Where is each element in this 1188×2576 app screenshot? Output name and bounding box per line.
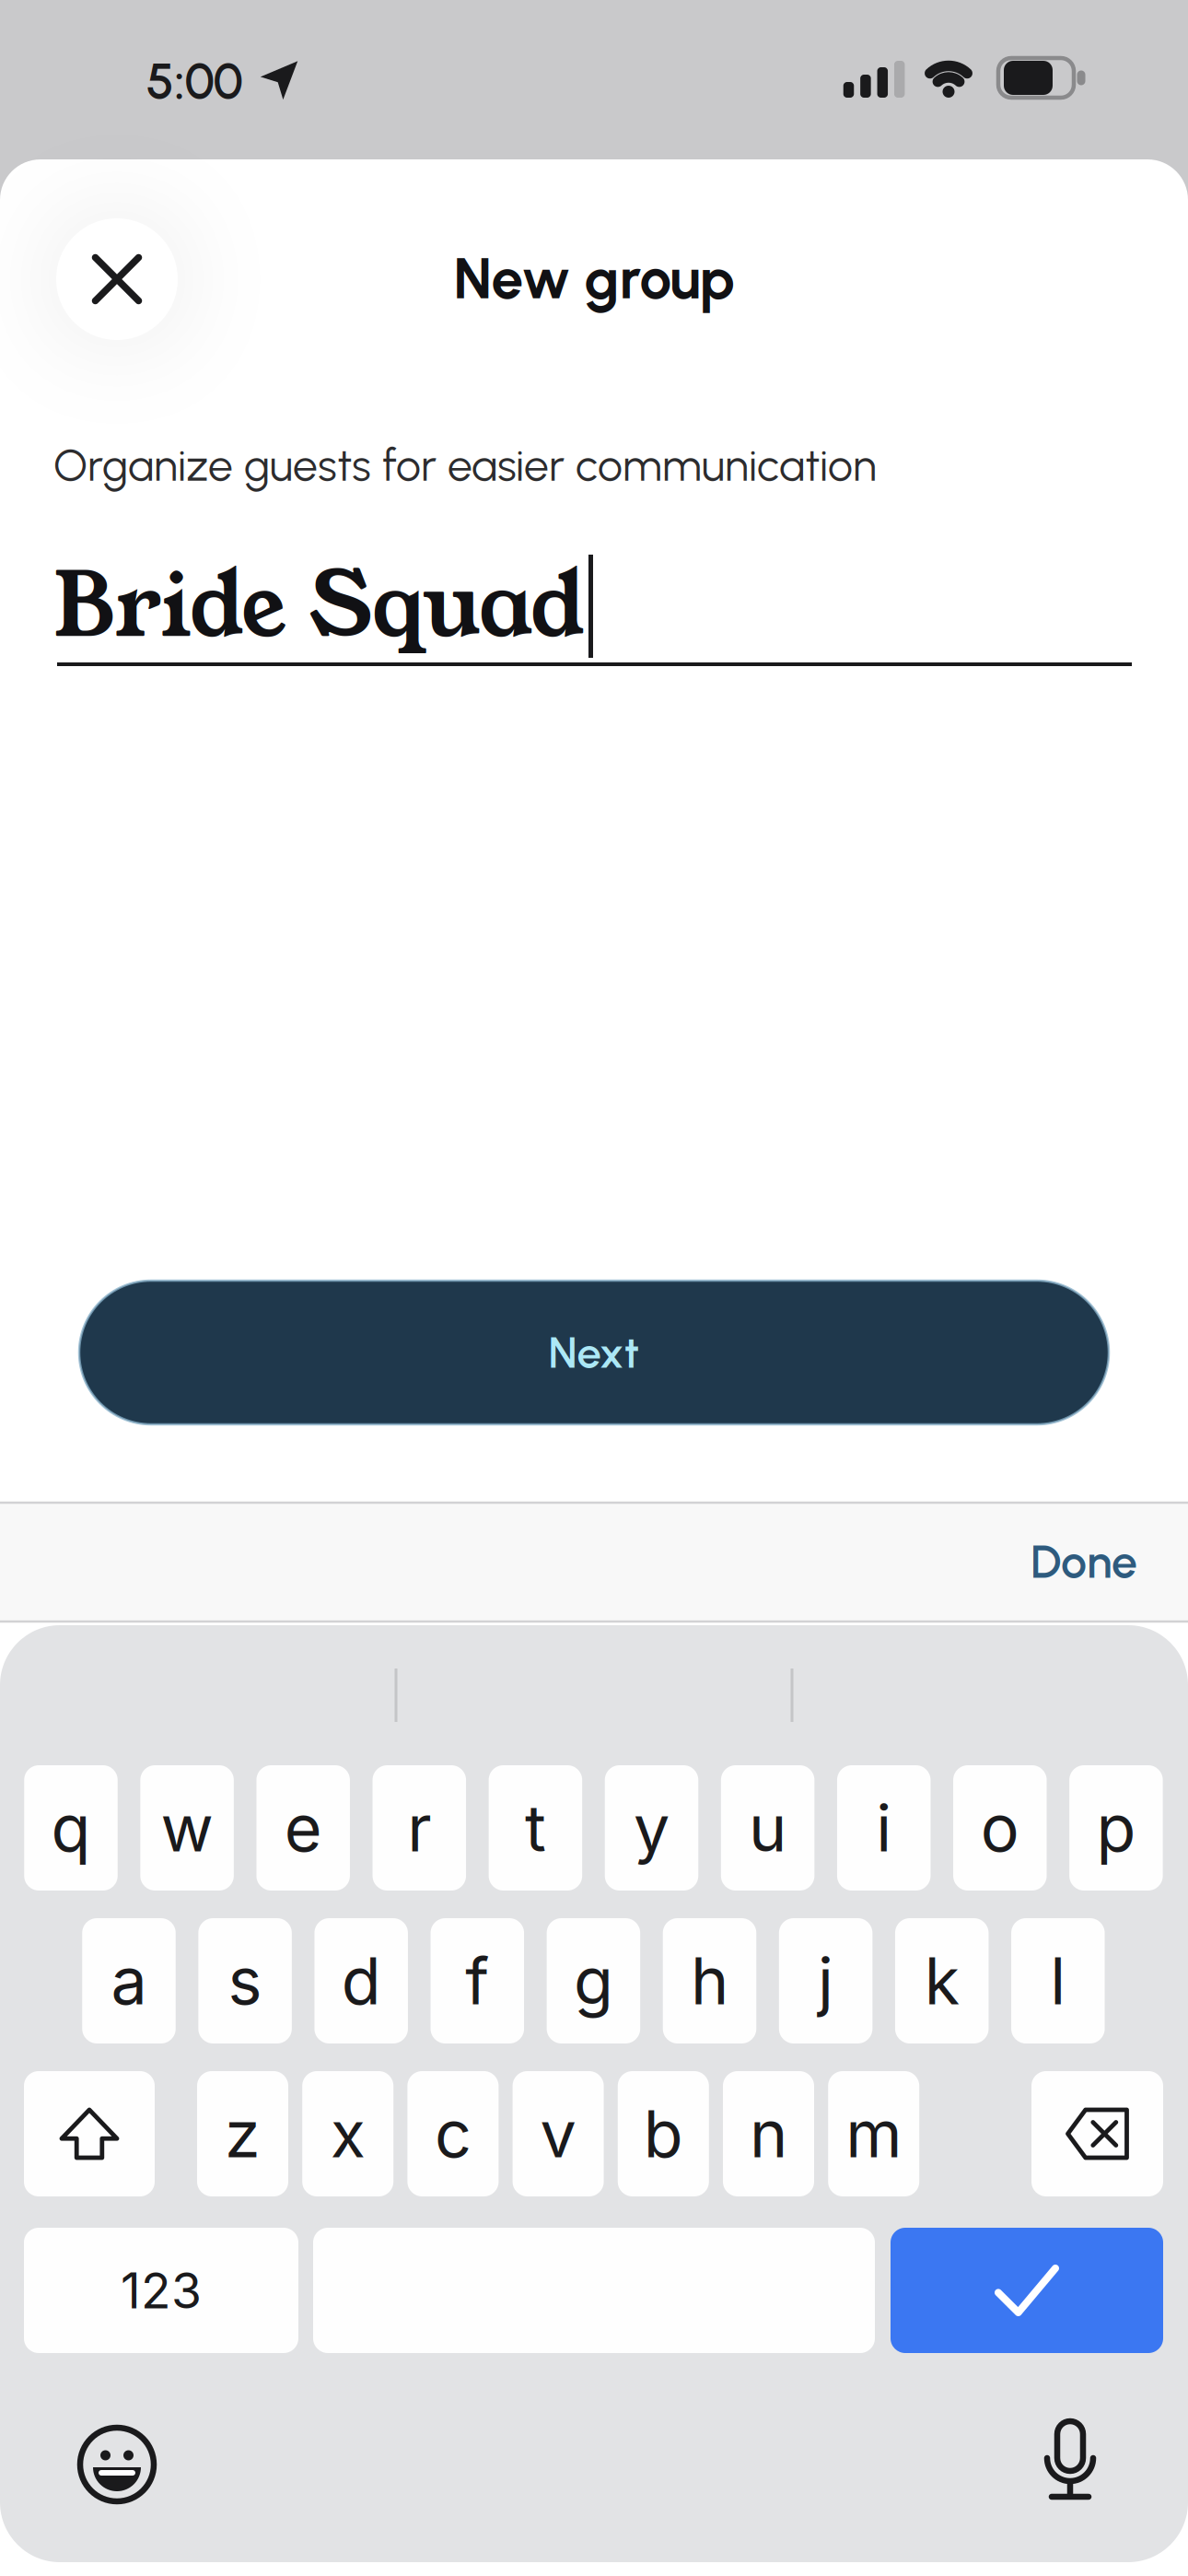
staticText: k bbox=[924, 1942, 959, 2020]
staticText: h bbox=[691, 1942, 728, 2020]
button[interactable]: Next bbox=[79, 1281, 1109, 1424]
staticText: i bbox=[876, 1789, 892, 1867]
button[interactable]: e bbox=[256, 1765, 350, 1891]
staticText: Organize guests for easier communication bbox=[53, 439, 877, 492]
button[interactable]: x bbox=[302, 2071, 393, 2196]
staticText: m bbox=[846, 2095, 902, 2173]
button[interactable]: d bbox=[314, 1918, 408, 2043]
staticText: n bbox=[750, 2095, 787, 2173]
staticText: r bbox=[407, 1789, 431, 1867]
button[interactable]: h bbox=[663, 1918, 756, 2043]
button[interactable]: f bbox=[431, 1918, 524, 2043]
button[interactable]: b bbox=[618, 2071, 709, 2196]
button[interactable]: j bbox=[779, 1918, 872, 2043]
button[interactable]: z bbox=[197, 2071, 288, 2196]
button[interactable]: w bbox=[140, 1765, 234, 1891]
button[interactable]: k bbox=[895, 1918, 989, 2043]
staticText: 5:00 bbox=[146, 51, 243, 111]
button[interactable]: l bbox=[1011, 1918, 1105, 2043]
button[interactable]: m bbox=[828, 2071, 919, 2196]
button[interactable]: q bbox=[24, 1765, 118, 1891]
button[interactable]: Dictate bbox=[1026, 2417, 1114, 2505]
staticText: g bbox=[574, 1942, 613, 2020]
staticText: j bbox=[818, 1942, 834, 2020]
staticText: s bbox=[228, 1942, 262, 2020]
button[interactable]: p bbox=[1069, 1765, 1163, 1891]
staticText: o bbox=[981, 1789, 1019, 1867]
staticText: t bbox=[525, 1789, 546, 1867]
button[interactable]: g bbox=[547, 1918, 640, 2043]
button[interactable]: i bbox=[837, 1765, 931, 1891]
staticText: a bbox=[111, 1942, 147, 2020]
button[interactable]: t bbox=[489, 1765, 582, 1891]
staticText: f bbox=[465, 1942, 489, 2020]
staticText: b bbox=[644, 2095, 683, 2173]
button[interactable]: Delete bbox=[1031, 2071, 1163, 2196]
button[interactable]: o bbox=[953, 1765, 1047, 1891]
button[interactable]: s bbox=[198, 1918, 292, 2043]
staticText: c bbox=[435, 2095, 471, 2173]
staticText: Bride Squad bbox=[53, 545, 585, 668]
button[interactable]: y bbox=[605, 1765, 698, 1891]
staticText: l bbox=[1050, 1942, 1066, 2020]
staticText: 123 bbox=[121, 2261, 202, 2320]
staticText: q bbox=[51, 1789, 91, 1867]
button[interactable]: Close bbox=[48, 210, 186, 348]
staticText: x bbox=[330, 2095, 365, 2173]
staticText: u bbox=[749, 1789, 787, 1867]
button[interactable]: r bbox=[373, 1765, 466, 1891]
button[interactable]: n bbox=[723, 2071, 814, 2196]
button[interactable]: Emoji bbox=[73, 2420, 161, 2509]
staticText: e bbox=[284, 1789, 322, 1867]
staticText: New group bbox=[454, 244, 734, 313]
button[interactable]: 123 bbox=[24, 2228, 298, 2353]
staticText: w bbox=[161, 1789, 213, 1867]
button[interactable]: v bbox=[513, 2071, 604, 2196]
staticText: v bbox=[540, 2095, 576, 2173]
staticText: p bbox=[1096, 1789, 1136, 1867]
staticText: y bbox=[634, 1789, 670, 1867]
button[interactable]: u bbox=[721, 1765, 814, 1891]
staticText: Done bbox=[1031, 1534, 1137, 1589]
button[interactable]: Done bbox=[1031, 1534, 1137, 1589]
button[interactable]: Return bbox=[891, 2228, 1163, 2353]
staticText: d bbox=[341, 1942, 381, 2020]
button[interactable]: Shift bbox=[24, 2071, 155, 2196]
staticText: z bbox=[225, 2095, 261, 2173]
button[interactable]: c bbox=[407, 2071, 499, 2196]
staticText: Next bbox=[548, 1326, 640, 1379]
button[interactable]: a bbox=[82, 1918, 176, 2043]
